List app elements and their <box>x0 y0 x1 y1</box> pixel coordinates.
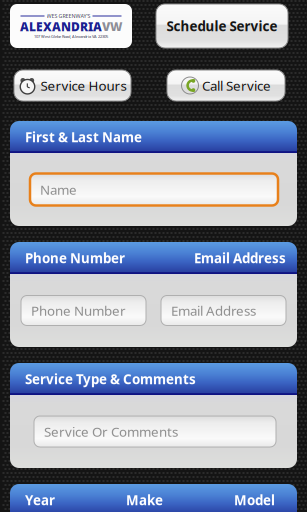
button[interactable]: Phone Number <box>21 295 146 325</box>
staticText: Name <box>40 181 77 198</box>
staticText: Email Address <box>171 302 256 319</box>
button[interactable]: Name <box>30 173 278 205</box>
staticText: Phone Number <box>25 249 125 267</box>
staticText: Year <box>25 491 55 509</box>
staticText: Schedule Service <box>166 17 277 35</box>
button[interactable]: Schedule Service <box>156 4 288 48</box>
staticText: Service Type & Comments <box>25 370 196 388</box>
button[interactable]: Service Hours <box>14 70 131 101</box>
staticText: Make <box>126 491 163 509</box>
staticText: 107 West Glebe Road, Alexandria VA 22305 <box>34 34 108 39</box>
staticText: VW <box>102 18 122 34</box>
staticText: ALEXANDRIA <box>20 18 102 34</box>
staticText: Email Address <box>194 249 286 267</box>
staticText: Service Hours <box>40 77 126 94</box>
button[interactable]: Call Service <box>167 70 285 101</box>
staticText: First & Last Name <box>25 128 142 146</box>
button[interactable]: Service Or Comments <box>34 416 276 447</box>
staticText: WES GREENWAY'S <box>46 12 90 20</box>
staticText: Phone Number <box>31 302 126 319</box>
button[interactable]: Email Address <box>161 295 286 325</box>
staticText: Service Or Comments <box>44 423 178 440</box>
staticText: Model <box>234 491 275 509</box>
staticText: Call Service <box>202 77 271 94</box>
button[interactable]: Alexandria VW <box>10 4 132 48</box>
